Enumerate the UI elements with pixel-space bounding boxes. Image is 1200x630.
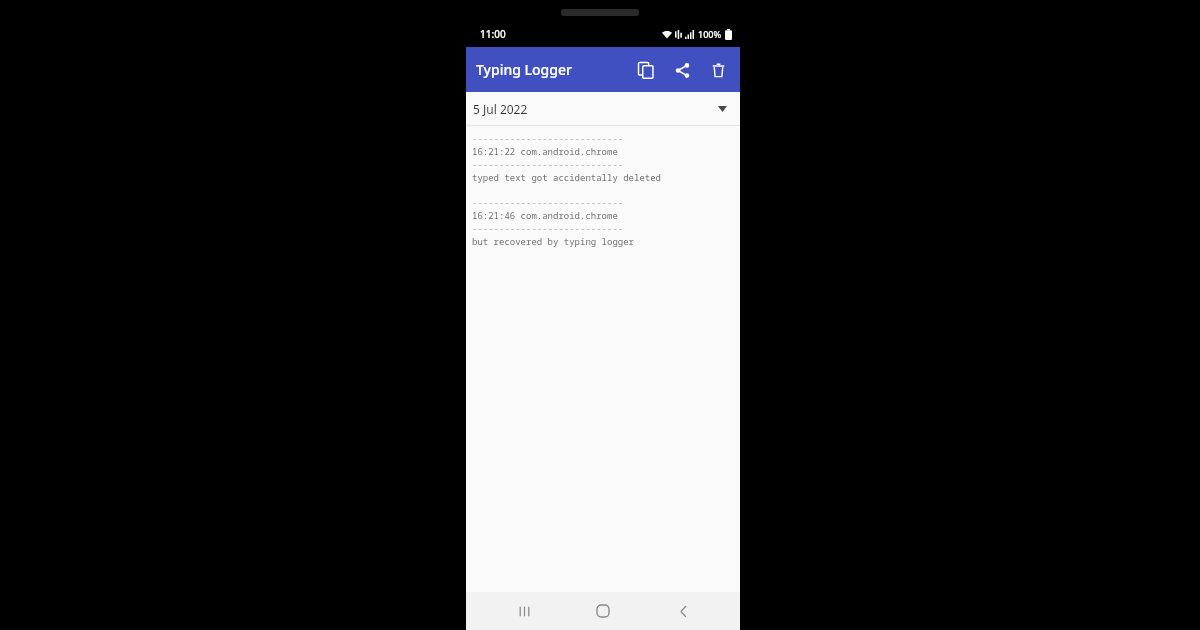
staticText: ----------------------------	[472, 132, 624, 144]
staticText: typed text got accidentally deleted	[472, 171, 662, 183]
staticText: 16:21:22 com.android.chrome	[472, 145, 618, 157]
button[interactable]: Back	[661, 592, 705, 630]
staticText: ----------------------------	[472, 222, 624, 234]
staticText: 16:21:46 com.android.chrome	[472, 209, 618, 221]
staticText: ----------------------------	[472, 196, 624, 208]
staticText: 5 Jul 2022	[473, 101, 528, 117]
button[interactable]: Recents	[502, 592, 546, 630]
button[interactable]: Home	[581, 592, 625, 630]
staticText: ----------------------------	[472, 158, 624, 170]
button[interactable]: Delete	[700, 52, 736, 88]
staticText: but recovered by typing logger	[472, 235, 635, 247]
staticText: 11:00	[480, 27, 506, 41]
button[interactable]: Copy	[628, 52, 664, 88]
staticText: 100%	[698, 28, 722, 40]
button[interactable]: Share	[664, 52, 700, 88]
staticText: Typing Logger	[476, 60, 572, 79]
button[interactable]: 5 Jul 2022	[466, 92, 740, 126]
